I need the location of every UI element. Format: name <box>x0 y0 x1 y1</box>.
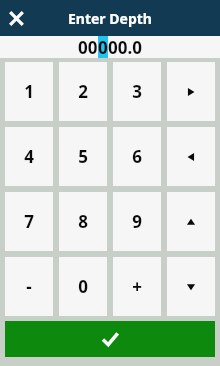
button[interactable]: 3 <box>113 62 161 121</box>
staticText: 2 <box>78 80 88 103</box>
staticText: 0 <box>78 275 88 298</box>
staticText: 3 <box>132 80 142 103</box>
staticText: Enter Depth <box>68 9 152 28</box>
button[interactable]: 5 <box>59 127 107 186</box>
button[interactable]: 9 <box>113 192 161 251</box>
button[interactable]: 2 <box>59 62 107 121</box>
button[interactable]: Move left <box>167 127 215 186</box>
staticText: 9 <box>132 210 142 233</box>
button[interactable]: + <box>113 257 161 316</box>
button[interactable]: Decrease <box>167 257 215 316</box>
staticText: 7 <box>24 210 34 233</box>
staticText: 00 <box>78 36 98 58</box>
button[interactable]: 4 <box>5 127 53 186</box>
staticText: 0 <box>98 36 108 58</box>
staticText: 4 <box>24 145 34 168</box>
staticText: 1 <box>24 80 34 103</box>
button[interactable]: 7 <box>5 192 53 251</box>
staticText: + <box>132 275 142 298</box>
button[interactable]: Confirm <box>5 321 215 357</box>
button[interactable]: 1 <box>5 62 53 121</box>
staticText: - <box>26 275 32 298</box>
button[interactable]: Close <box>0 2 32 34</box>
button[interactable]: Increase <box>167 192 215 251</box>
button[interactable]: Move right <box>167 62 215 121</box>
button[interactable]: 8 <box>59 192 107 251</box>
staticText: 8 <box>78 210 88 233</box>
button[interactable]: - <box>5 257 53 316</box>
staticText: 00.0 <box>108 36 142 58</box>
button[interactable]: 0 <box>59 257 107 316</box>
staticText: 5 <box>78 145 88 168</box>
button[interactable]: 6 <box>113 127 161 186</box>
staticText: 6 <box>132 145 142 168</box>
